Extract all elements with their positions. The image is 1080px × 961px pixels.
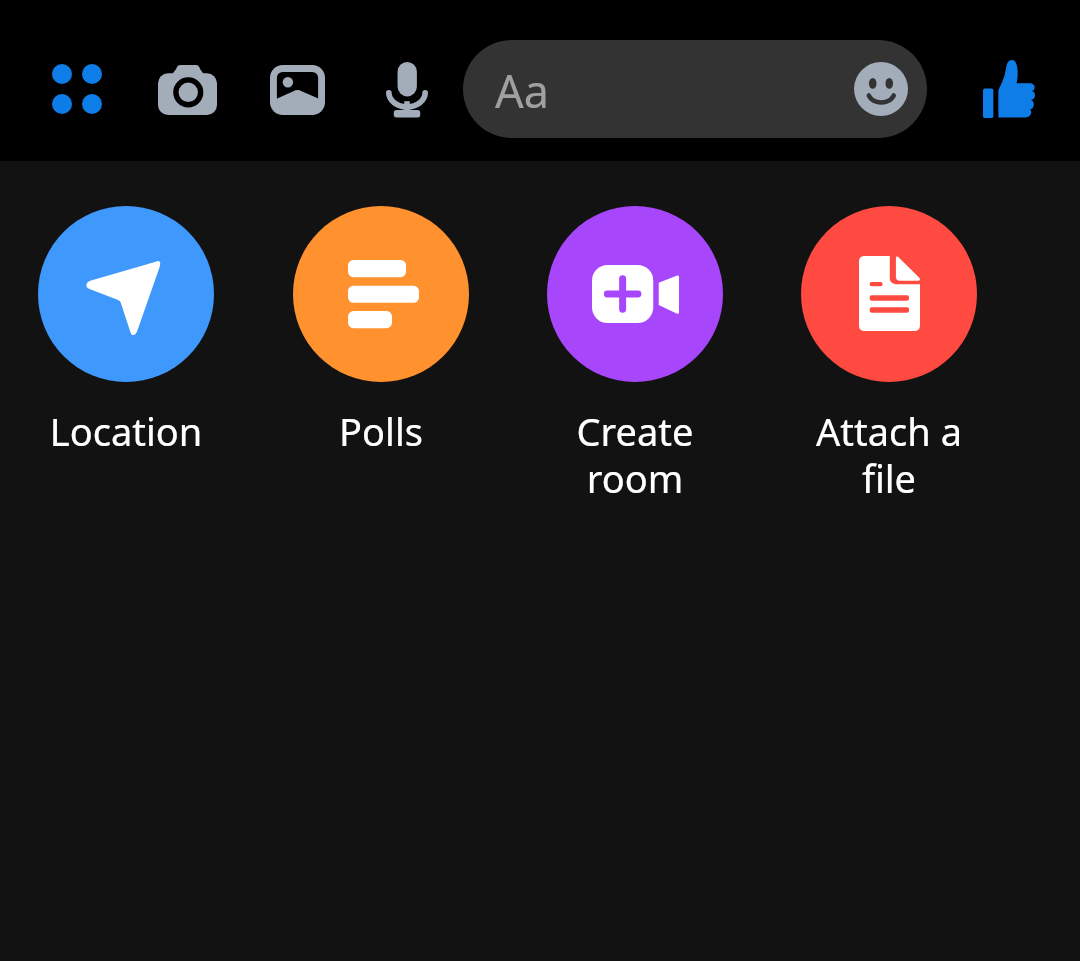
button[interactable]: Photos: [255, 48, 339, 132]
button[interactable]: Emoji: [854, 62, 908, 116]
button[interactable]: Voice message: [365, 48, 449, 132]
staticText: Attach a file: [801, 405, 977, 504]
button[interactable]: Attach a file: [801, 206, 977, 504]
button[interactable]: Location: [38, 206, 214, 457]
button[interactable]: Aa: [463, 40, 927, 138]
button[interactable]: Polls: [293, 206, 469, 457]
staticText: Aa: [495, 60, 550, 121]
button[interactable]: Create room: [547, 206, 723, 504]
staticText: Create room: [547, 405, 723, 504]
button[interactable]: Like: [967, 47, 1051, 131]
button[interactable]: More options: [35, 47, 119, 131]
staticText: Location: [38, 405, 214, 457]
staticText: Polls: [293, 405, 469, 457]
button[interactable]: Camera: [145, 48, 229, 132]
